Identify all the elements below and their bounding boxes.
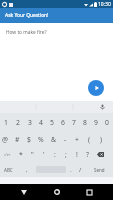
button[interactable]: # [11, 131, 23, 147]
staticText: ' [43, 150, 45, 159]
button[interactable]: $ [23, 131, 35, 147]
staticText: * [19, 150, 23, 159]
staticText: ABC [4, 167, 13, 173]
button[interactable]: @ [0, 131, 11, 147]
staticText: 7 [72, 118, 76, 127]
button[interactable]: 9 [90, 113, 101, 131]
button[interactable]: ? [82, 147, 93, 162]
button[interactable]: 2 [12, 113, 24, 131]
button[interactable]: ABC [0, 162, 17, 177]
button[interactable]: % [35, 131, 47, 147]
button[interactable]: 4 [35, 113, 46, 131]
staticText: @ [2, 135, 9, 144]
button[interactable]: : [49, 147, 60, 162]
button[interactable]: Home [49, 184, 65, 200]
button[interactable]: ! [71, 147, 82, 162]
button[interactable]: - [59, 131, 71, 147]
button[interactable]: 8 [79, 113, 90, 131]
staticText: . [70, 166, 72, 174]
staticText: 4 [39, 118, 43, 127]
button[interactable]: ; [60, 147, 71, 162]
button[interactable]: & [47, 131, 59, 147]
button[interactable]: 6 [57, 113, 68, 131]
staticText: ( [88, 135, 91, 144]
button[interactable]: Send [88, 80, 104, 96]
staticText: Send [94, 167, 105, 173]
staticText: " [31, 150, 34, 159]
button[interactable]: 3 [24, 113, 35, 131]
staticText: : [54, 150, 56, 159]
staticText: Ask Your Question! [5, 12, 49, 19]
staticText: How to make fire? [6, 29, 47, 36]
button[interactable]: " [27, 147, 38, 162]
staticText: 3 [28, 118, 32, 127]
staticText: 2 [16, 118, 20, 127]
button[interactable]: * [15, 147, 27, 162]
button[interactable]: ) [95, 131, 107, 147]
staticText: + [75, 135, 79, 144]
button[interactable]: Backspace [93, 147, 108, 162]
staticText: 9 [94, 118, 98, 127]
button[interactable]: ' [38, 147, 49, 162]
button[interactable]: Voice input [100, 104, 105, 110]
staticText: & [51, 135, 56, 144]
staticText: $ [27, 135, 31, 144]
staticText: 10:30 [98, 1, 111, 8]
button[interactable]: =\< [0, 147, 15, 162]
staticText: 8 [83, 118, 87, 127]
button[interactable]: 7 [68, 113, 79, 131]
button[interactable]: 0 [101, 113, 112, 131]
staticText: 1 [4, 118, 8, 127]
staticText: ? [86, 150, 89, 159]
staticText: 5 [50, 118, 54, 127]
button[interactable]: Send [86, 162, 113, 177]
staticText: - [64, 135, 67, 144]
staticText: 0 [105, 118, 109, 127]
staticText: ! [76, 150, 78, 159]
button[interactable]: . [66, 162, 75, 177]
button[interactable]: + [71, 131, 83, 147]
staticText: ; [65, 150, 67, 159]
button[interactable]: Recents [81, 184, 97, 200]
button[interactable]: ( [83, 131, 95, 147]
staticText: # [15, 135, 20, 144]
staticText: % [38, 135, 44, 144]
staticText: / [79, 166, 82, 174]
staticText: ) [100, 135, 103, 144]
button[interactable]: / [75, 162, 86, 177]
button[interactable]: Back [16, 184, 32, 200]
staticText: =\< [4, 152, 11, 158]
button[interactable]: 1 [0, 113, 12, 131]
staticText: 6 [61, 118, 65, 127]
button[interactable]: 5 [46, 113, 57, 131]
staticText: , [26, 166, 28, 174]
button[interactable]: , [17, 162, 36, 177]
